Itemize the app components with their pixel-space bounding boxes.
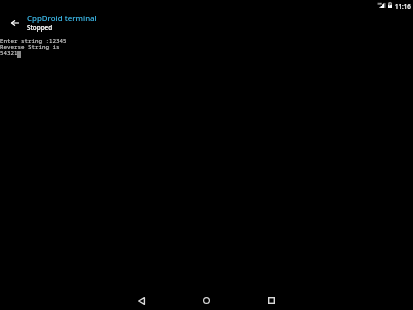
staticText: Stopped [27,23,53,32]
button[interactable]: Back [126,288,156,310]
button[interactable]: Recent apps [256,288,286,310]
staticText: Reverse String is [0,44,60,50]
button[interactable]: Navigate up, CppDroid terminal, Stopped [0,11,104,34]
staticText: Enter string :12345 [0,38,67,44]
staticText: 11:16 [395,2,411,10]
staticText: CppDroid terminal [27,13,97,24]
staticText: 54321 [0,50,18,56]
button[interactable]: Home [191,288,221,310]
button[interactable]: Terminal output [0,35,413,285]
